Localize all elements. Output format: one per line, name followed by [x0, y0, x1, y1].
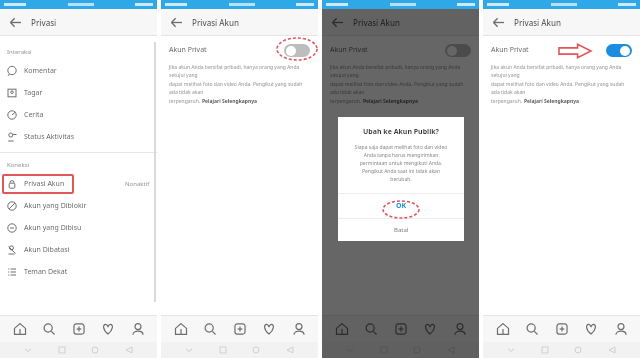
button[interactable]: OK	[338, 194, 464, 218]
button[interactable]: Recents	[378, 344, 390, 356]
button[interactable]: Back	[167, 13, 185, 31]
staticText: Nonaktif	[125, 180, 150, 188]
staticText: Koneksi	[7, 161, 30, 169]
button[interactable]: Komentar	[0, 60, 157, 82]
button[interactable]: Home	[171, 319, 191, 339]
button[interactable]: Profile	[611, 319, 631, 339]
button[interactable]: Home	[332, 319, 352, 339]
button[interactable]: Cerita	[0, 104, 157, 126]
button[interactable]: Home button	[572, 344, 584, 356]
button[interactable]: Hide	[22, 344, 34, 356]
staticText: Batal	[394, 226, 409, 234]
staticText: Pelajari Selengkapnya	[524, 98, 580, 105]
button[interactable]: Back	[489, 13, 507, 31]
staticText: Akun yang Dibisu	[24, 223, 82, 233]
button[interactable]: Search	[361, 319, 381, 339]
button[interactable]: Batal	[338, 219, 464, 241]
button[interactable]: Home button	[250, 344, 262, 356]
button[interactable]: Profile	[450, 319, 470, 339]
button[interactable]: Activity	[581, 319, 601, 339]
staticText: OK	[396, 201, 407, 211]
button[interactable]: Akun Dibatasi	[0, 239, 157, 261]
staticText: Privasi	[31, 17, 57, 28]
button[interactable]: Hide	[505, 344, 517, 356]
button[interactable]: Back button	[606, 344, 618, 356]
button[interactable]: Recents	[217, 344, 229, 356]
staticText: Jika akun Anda bersifat pribadi, hanya o…	[330, 64, 471, 79]
staticText: Akun Privat	[330, 45, 368, 55]
button[interactable]: Akun yang Diblokir	[0, 195, 157, 217]
staticText: terpengaruh.	[330, 98, 363, 105]
button[interactable]: Private account toggle	[284, 44, 310, 57]
staticText: Privasi Akun	[192, 17, 240, 28]
button[interactable]: Activity	[98, 319, 118, 339]
staticText: Akun Privat	[169, 45, 207, 55]
staticText: dapat melihat foto dan video Anda. Pengi…	[330, 81, 471, 96]
button[interactable]: Back button	[284, 344, 296, 356]
staticText: Komentar	[24, 66, 57, 76]
button[interactable]: Add post	[69, 319, 89, 339]
staticText: Ubah ke Akun Publik?	[338, 127, 464, 137]
button[interactable]: Home	[10, 319, 30, 339]
staticText: Pelajari Selengkapnya	[363, 98, 419, 105]
staticText: terpengaruh.	[169, 98, 202, 105]
staticText: Akun yang Diblokir	[24, 201, 87, 211]
button[interactable]: Back	[328, 13, 346, 31]
button[interactable]: Add post	[391, 319, 411, 339]
button[interactable]: Add post	[552, 319, 572, 339]
button[interactable]: Akun Privat	[322, 36, 479, 64]
staticText: dapat melihat foto dan video Anda. Pengi…	[491, 81, 632, 96]
staticText: Status Aktivitas	[24, 132, 75, 142]
button[interactable]: Recents	[539, 344, 551, 356]
button[interactable]: Akun Privat	[483, 36, 640, 64]
button[interactable]: Back button	[123, 344, 135, 356]
staticText: Interaksi	[7, 48, 32, 56]
button[interactable]: Privasi Akun	[0, 173, 157, 195]
button[interactable]: Home button	[89, 344, 101, 356]
staticText: terpengaruh.	[491, 98, 524, 105]
button[interactable]: Profile	[128, 319, 148, 339]
button[interactable]: Akun Privat	[161, 36, 318, 64]
staticText: Teman Dekat	[24, 267, 68, 277]
staticText: Jika akun Anda bersifat pribadi, hanya o…	[491, 64, 632, 79]
button[interactable]: Back	[6, 13, 24, 31]
button[interactable]: Profile	[289, 319, 309, 339]
button[interactable]: Recents	[56, 344, 68, 356]
staticText: Tagar	[24, 88, 43, 98]
button[interactable]: Activity	[259, 319, 279, 339]
button[interactable]: Back button	[445, 344, 457, 356]
button[interactable]: Home button	[411, 344, 423, 356]
button[interactable]: Home	[493, 319, 513, 339]
button[interactable]: Search	[200, 319, 220, 339]
button[interactable]: Activity	[420, 319, 440, 339]
staticText: Privasi Akun	[514, 17, 562, 28]
staticText: Privasi Akun	[24, 179, 65, 189]
button[interactable]: Status Aktivitas	[0, 126, 157, 148]
button[interactable]: Search	[522, 319, 542, 339]
staticText: Jika akun Anda bersifat pribadi, hanya o…	[169, 64, 310, 79]
button[interactable]: Private account toggle	[445, 44, 471, 57]
staticText: Cerita	[24, 110, 44, 120]
button[interactable]: Akun yang Dibisu	[0, 217, 157, 239]
staticText: dapat melihat foto dan video Anda. Pengi…	[169, 81, 310, 96]
button[interactable]: Hide	[183, 344, 195, 356]
button[interactable]: Add post	[230, 319, 250, 339]
staticText: Privasi Akun	[353, 17, 401, 28]
button[interactable]: Tagar	[0, 82, 157, 104]
staticText: Akun Privat	[491, 45, 529, 55]
staticText: Akun Dibatasi	[24, 245, 70, 255]
button[interactable]: Teman Dekat	[0, 261, 157, 283]
button[interactable]: Search	[39, 319, 59, 339]
staticText: Siapa saja dapat melihat foto dan video …	[346, 144, 456, 183]
staticText: Pelajari Selengkapnya	[202, 98, 258, 105]
button[interactable]: Private account toggle	[606, 44, 632, 57]
